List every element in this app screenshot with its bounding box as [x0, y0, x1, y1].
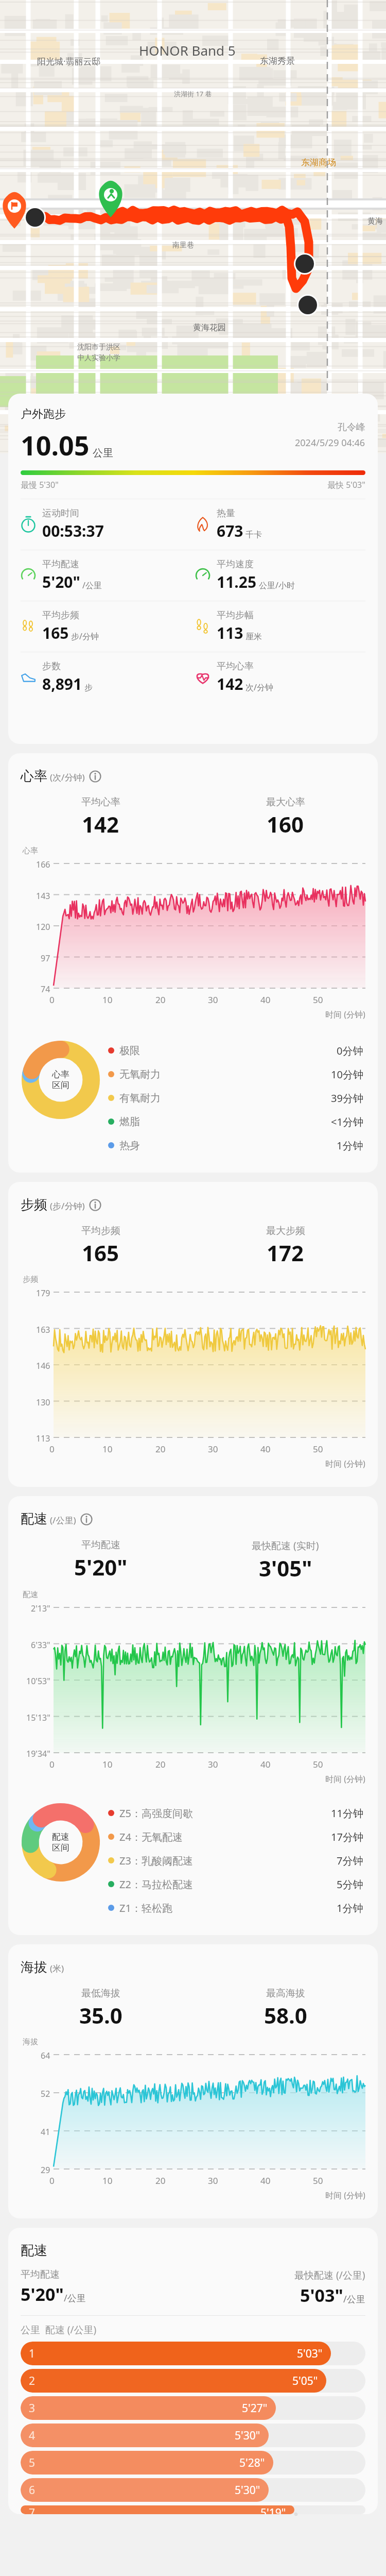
staticText: 1: [29, 2346, 36, 2361]
staticText: 最高海拔: [266, 1987, 305, 1999]
staticText: 平均步幅: [217, 609, 254, 621]
button[interactable]: 海拔: [21, 1959, 378, 1976]
staticText: 平均心率: [217, 660, 254, 672]
staticText: 50: [313, 1443, 323, 1455]
staticText: 166: [36, 859, 50, 868]
button[interactable]: 平均步频: [19, 609, 193, 643]
button[interactable]: Z5：高强度间歇: [108, 1801, 363, 1825]
staticText: HONOR Band 5: [139, 41, 236, 59]
staticText: 最大步频: [266, 1225, 305, 1237]
staticText: Z5：高强度间歇: [119, 1806, 193, 1820]
button[interactable]: 4: [21, 2424, 365, 2447]
staticText: 10: [102, 1443, 113, 1455]
staticText: 10: [102, 994, 113, 1006]
staticText: 心率: [52, 1069, 69, 1080]
staticText: 配速: [21, 2242, 47, 2259]
button[interactable]: 热量: [193, 507, 367, 541]
staticText: 配速: [52, 1832, 69, 1842]
button[interactable]: 有氧耐力: [108, 1086, 363, 1110]
button[interactable]: 6: [21, 2478, 365, 2502]
staticText: 0分钟: [337, 1044, 363, 1058]
staticText: 区间: [52, 1842, 69, 1853]
staticText: 最快配速 (实时): [252, 1539, 319, 1552]
staticText: 2024/5/29 04:46: [295, 436, 365, 449]
staticText: 39分钟: [331, 1091, 363, 1105]
staticText: 7: [29, 2505, 36, 2514]
staticText: 公里: [93, 447, 113, 460]
button[interactable]: 1: [21, 2342, 365, 2365]
button[interactable]: 5: [21, 2451, 365, 2475]
staticText: 4: [29, 2428, 36, 2443]
staticText: 平均配速: [81, 1539, 120, 1551]
staticText: 5分钟: [337, 1877, 363, 1891]
staticText: 160: [267, 809, 304, 839]
staticText: Z3：乳酸阈配速: [119, 1854, 193, 1868]
button[interactable]: 平均心率: [193, 660, 367, 694]
staticText: 最慢 5'30": [21, 479, 59, 490]
staticText: Z1：轻松跑: [119, 1901, 172, 1915]
staticText: 5'30": [235, 2428, 260, 2443]
staticText: 最大心率: [266, 796, 305, 808]
staticText: 2: [29, 2374, 36, 2388]
button[interactable]: 配速: [21, 1511, 378, 1528]
staticText: 公里/小时: [259, 580, 295, 591]
staticText: 5'28": [239, 2455, 265, 2470]
button[interactable]: 步数: [19, 660, 193, 694]
staticText: 40: [260, 1443, 271, 1455]
button[interactable]: 平均步幅: [193, 609, 367, 643]
staticText: 5'20": [42, 571, 80, 592]
staticText: 143: [36, 890, 50, 900]
staticText: 142: [217, 673, 243, 694]
staticText: 30: [208, 994, 218, 1006]
staticText: 146: [36, 1360, 50, 1369]
staticText: 130: [36, 1397, 50, 1406]
staticText: 东湖秀景: [260, 56, 295, 66]
staticText: 配速: [23, 1590, 38, 1600]
button[interactable]: Info: [89, 770, 101, 783]
staticText: 燃脂: [119, 1115, 140, 1128]
staticText: 孔令峰: [338, 421, 365, 433]
button[interactable]: 3: [21, 2396, 365, 2420]
staticText: 步数: [42, 660, 61, 672]
button[interactable]: Z2：马拉松配速: [108, 1872, 363, 1896]
staticText: 步频: [23, 1275, 38, 1284]
staticText: 5'20": [74, 1552, 128, 1582]
staticText: 3'05": [259, 1553, 312, 1583]
button[interactable]: Z4：无氧配速: [108, 1825, 363, 1849]
staticText: 黄海花园: [193, 323, 226, 333]
staticText: 平均心率: [81, 796, 120, 808]
button[interactable]: 步频: [21, 1196, 378, 1213]
button[interactable]: Z1：轻松跑: [108, 1896, 363, 1920]
staticText: 心率: [23, 846, 38, 856]
staticText: 6'33": [31, 1639, 50, 1649]
staticText: 20: [155, 2175, 166, 2187]
button[interactable]: Info: [89, 1199, 101, 1211]
staticText: 5: [29, 2455, 36, 2470]
button[interactable]: 平均速度: [193, 558, 367, 592]
button[interactable]: Info: [80, 1513, 93, 1526]
button[interactable]: 运动时间: [19, 507, 193, 541]
staticText: 平均速度: [217, 558, 254, 570]
staticText: 29: [41, 2164, 50, 2174]
staticText: 10'53": [26, 1675, 50, 1685]
button[interactable]: 7: [21, 2505, 365, 2514]
staticText: 30: [208, 2175, 218, 2187]
staticText: 步/分钟: [71, 631, 99, 642]
button[interactable]: 燃脂: [108, 1110, 363, 1133]
button[interactable]: 心率: [21, 768, 378, 785]
staticText: 沈阳市于洪区: [77, 343, 120, 352]
staticText: 南里巷: [172, 241, 194, 250]
staticText: Z2：马拉松配速: [119, 1877, 193, 1891]
button[interactable]: 无氧耐力: [108, 1062, 363, 1086]
button[interactable]: Z3：乳酸阈配速: [108, 1849, 363, 1872]
staticText: 8,891: [42, 673, 82, 694]
staticText: 5'03": [300, 2283, 343, 2307]
button[interactable]: 平均配速: [19, 558, 193, 592]
button[interactable]: 热身: [108, 1133, 363, 1157]
button[interactable]: 极限: [108, 1039, 363, 1062]
staticText: 40: [260, 2175, 271, 2187]
button[interactable]: 2: [21, 2369, 365, 2393]
staticText: 热身: [119, 1139, 140, 1152]
staticText: 15'13": [26, 1712, 50, 1721]
staticText: 10: [102, 1758, 113, 1770]
